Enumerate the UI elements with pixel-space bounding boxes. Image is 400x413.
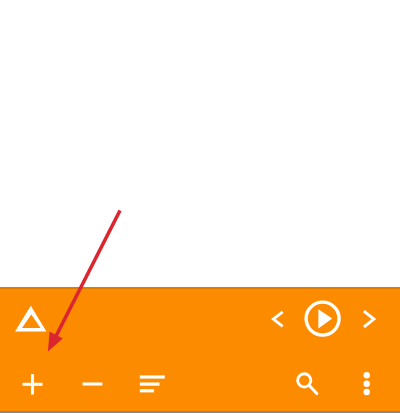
button[interactable]: Next	[357, 303, 381, 335]
button[interactable]: Previous	[266, 303, 290, 335]
button[interactable]: Sort	[134, 368, 168, 400]
button[interactable]: Add	[16, 368, 49, 400]
button[interactable]: Search	[291, 368, 322, 400]
button[interactable]: Play	[302, 298, 343, 339]
button[interactable]: App logo	[12, 303, 50, 335]
button[interactable]: More options	[353, 368, 381, 400]
button[interactable]: Remove	[76, 368, 109, 400]
